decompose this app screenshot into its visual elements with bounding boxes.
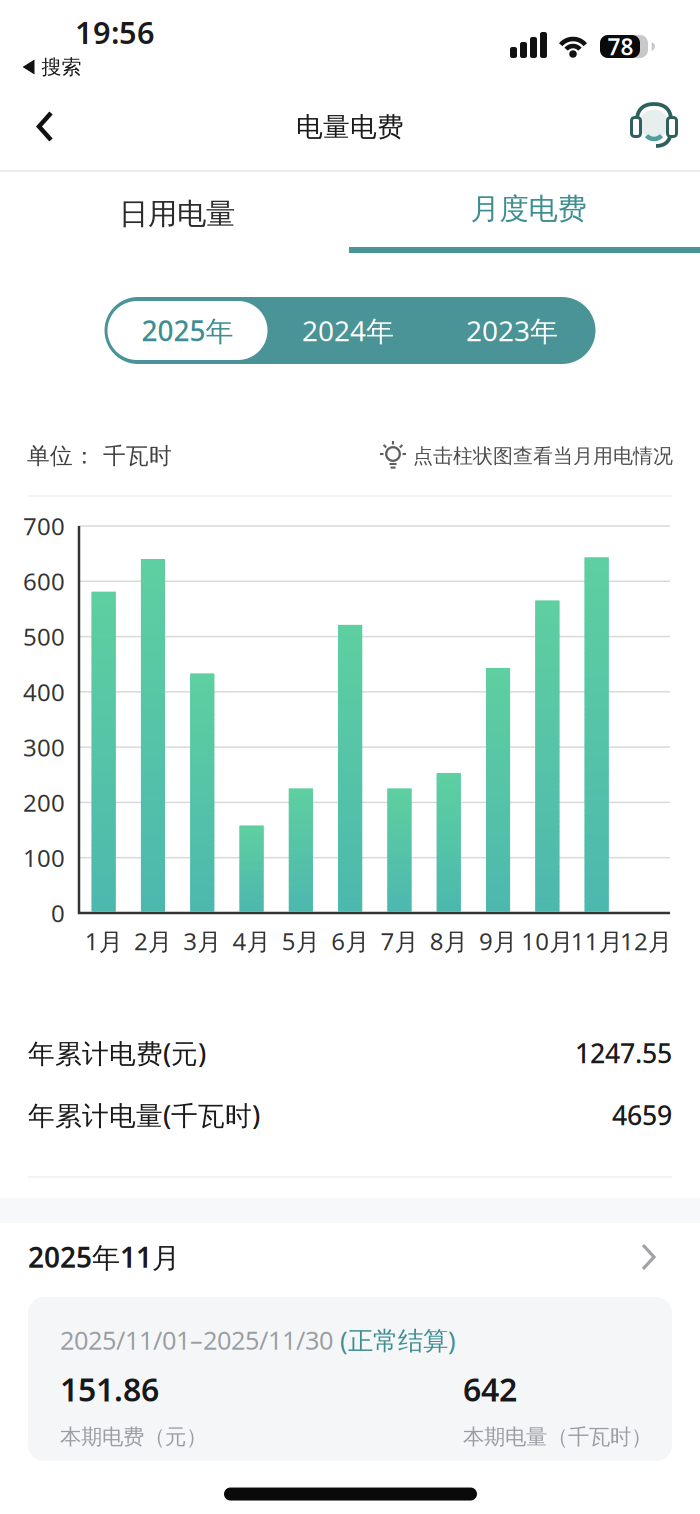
button[interactable] (486, 668, 510, 911)
staticText: 日用电量 (119, 196, 235, 232)
button[interactable] (387, 789, 411, 911)
button[interactable] (338, 625, 362, 911)
staticText: 700 (23, 510, 65, 542)
staticText: 1247.55 (575, 1035, 672, 1071)
button[interactable] (28, 1297, 672, 1461)
staticText: 本期电量（千瓦时） (463, 1424, 652, 1450)
staticText: 100 (23, 842, 65, 874)
button[interactable]: 2023年 (432, 297, 592, 364)
button[interactable]: 2025年 (107, 301, 268, 360)
staticText: 月度电费 (470, 191, 586, 227)
staticText: 19:56 (75, 12, 155, 52)
staticText: 2025年11月 (28, 1238, 180, 1276)
staticText: 2024年 (302, 312, 394, 349)
button[interactable] (437, 773, 461, 911)
staticText: 8月 (430, 925, 468, 957)
button[interactable] (141, 559, 165, 911)
staticText: 电量电费 (296, 111, 404, 143)
staticText: 6月 (331, 925, 369, 957)
staticText: 5月 (282, 925, 320, 957)
staticText: 151.86 (60, 1368, 159, 1410)
button[interactable] (630, 100, 678, 154)
staticText: 2025/11/01–2025/11/30 (60, 1323, 340, 1357)
button[interactable]: 搜索 (22, 55, 81, 79)
staticText: 0 (51, 897, 65, 929)
staticText: 2025年 (141, 312, 233, 349)
staticText: 11月 (571, 925, 623, 957)
staticText: 300 (23, 731, 65, 763)
button[interactable]: 日用电量 (2, 171, 352, 257)
button[interactable]: 月度电费 (349, 171, 700, 257)
staticText: 搜索 (41, 55, 81, 79)
staticText: 500 (23, 621, 65, 652)
staticText: 10月 (521, 925, 573, 957)
button[interactable] (289, 789, 313, 911)
button[interactable] (585, 558, 609, 911)
staticText: 年累计电量(千瓦时) (28, 1097, 260, 1133)
staticText: 2023年 (466, 312, 558, 349)
staticText: (正常结算) (340, 1323, 456, 1357)
staticText: 点击柱状图查看当月用电情况 (407, 444, 673, 468)
button[interactable]: 2024年 (268, 297, 428, 364)
staticText: 4月 (232, 925, 270, 957)
staticText: 200 (23, 786, 65, 818)
button[interactable] (535, 601, 559, 911)
staticText: 12月 (620, 925, 672, 957)
staticText: 600 (23, 565, 65, 597)
button[interactable]: 2025年11月 (28, 1227, 672, 1287)
staticText: 4659 (612, 1097, 672, 1133)
button[interactable] (92, 592, 116, 911)
staticText: 1月 (85, 925, 123, 957)
button[interactable] (39, 113, 53, 141)
button[interactable] (239, 826, 263, 911)
staticText: 78 (607, 31, 633, 61)
staticText: 年累计电费(元) (28, 1035, 206, 1071)
staticText: 单位： 千瓦时 (27, 442, 172, 470)
staticText: 642 (463, 1368, 517, 1410)
staticText: 3月 (183, 925, 221, 957)
staticText: 7月 (380, 925, 418, 957)
staticText: 9月 (479, 925, 517, 957)
staticText: 2月 (134, 925, 172, 957)
staticText: 400 (23, 676, 65, 708)
staticText: 本期电费（元） (60, 1424, 207, 1450)
button[interactable] (190, 674, 214, 911)
